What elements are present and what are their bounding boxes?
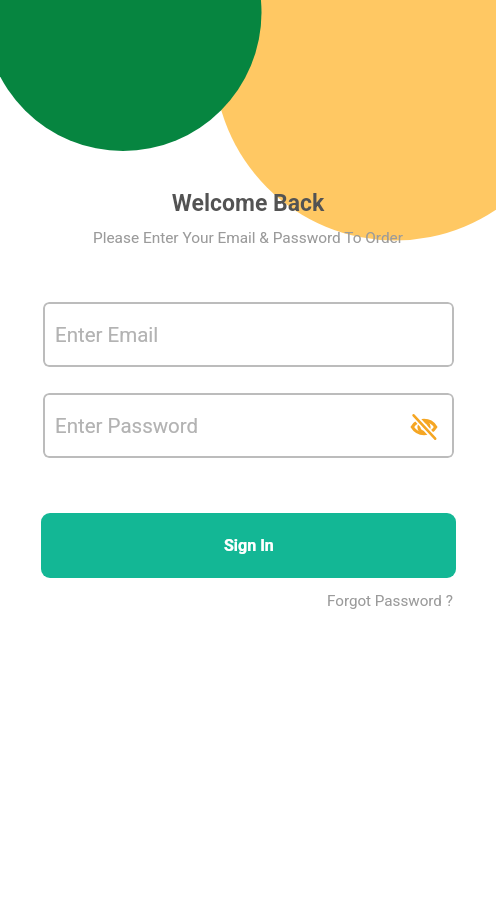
staticText: Sign In [224,536,274,555]
staticText: Enter Email [55,323,159,347]
staticText: Forgot Password ? [327,592,453,610]
button[interactable]: Sign In [41,513,456,578]
button[interactable]: Forgot Password ? [327,592,453,610]
button[interactable]: Enter Password [43,393,454,458]
staticText: Please Enter Your Email & Password To Or… [0,229,496,247]
button[interactable]: Show password [404,407,444,447]
button[interactable]: Enter Email [43,302,454,367]
staticText: Enter Password [55,414,199,438]
staticText: Welcome Back [0,190,496,217]
